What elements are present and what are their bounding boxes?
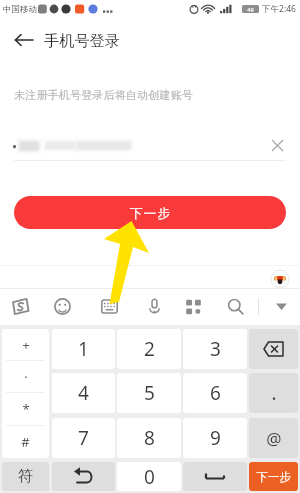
staticText: + [22,336,30,354]
staticText: 手机号登录 [44,31,120,50]
staticText: 符 [18,467,33,486]
button[interactable]: 6 [183,373,247,413]
staticText: 7 [78,425,89,451]
button[interactable]: Assistant [271,270,289,288]
button[interactable]: 7 [52,418,115,458]
button[interactable]: 8 [117,418,181,458]
button[interactable]: Space [183,462,247,491]
button[interactable]: Emoji [43,288,81,325]
button[interactable]: Undo [52,462,115,491]
staticText: · [24,368,28,386]
staticText: 1 [78,336,89,362]
button[interactable]: Hide keyboard [262,288,300,325]
staticText: 下午2:46 [262,3,296,15]
staticText: 5 [144,380,155,406]
button[interactable]: 下一步 [249,462,298,491]
staticText: 0 [144,464,155,490]
button[interactable]: + [2,329,49,360]
button[interactable]: . [249,373,298,413]
staticText: 6 [210,380,221,406]
button[interactable]: 下一步 [14,196,286,229]
button[interactable]: Sogou input [1,288,39,325]
button[interactable]: Back [4,22,44,58]
staticText: # [21,433,30,451]
button[interactable]: · [2,361,49,392]
button[interactable]: # [2,426,49,458]
button[interactable]: Keyboard [90,288,128,325]
staticText: 9 [210,425,221,451]
staticText: * [22,400,30,418]
button[interactable]: 9 [183,418,247,458]
button[interactable]: Search [216,288,254,325]
button[interactable]: 1 [52,329,115,369]
staticText: 3 [210,336,221,362]
button[interactable]: 5 [117,373,181,413]
button[interactable]: * [2,393,49,425]
button[interactable]: 0 [117,462,181,491]
staticText: 未注册手机号登录后将自动创建账号 [14,88,193,102]
button[interactable]: 4 [52,373,115,413]
staticText: . [271,380,277,406]
staticText: 2 [144,336,155,362]
button[interactable]: @ [249,418,298,458]
button[interactable]: Clear [265,133,289,157]
button[interactable]: Voice input [135,288,173,325]
button[interactable]: 符 [2,462,49,491]
button[interactable]: Backspace [249,329,298,369]
staticText: 8 [144,425,155,451]
staticText: 4 [78,380,89,406]
button[interactable]: Apps [174,288,212,325]
staticText: 下一步 [129,205,171,221]
button[interactable]: 2 [117,329,181,369]
staticText: 49 [247,6,254,13]
staticText: @ [266,427,282,450]
staticText: 下一步 [256,470,291,484]
staticText: 中国移动 [3,4,37,15]
button[interactable]: 3 [183,329,247,369]
